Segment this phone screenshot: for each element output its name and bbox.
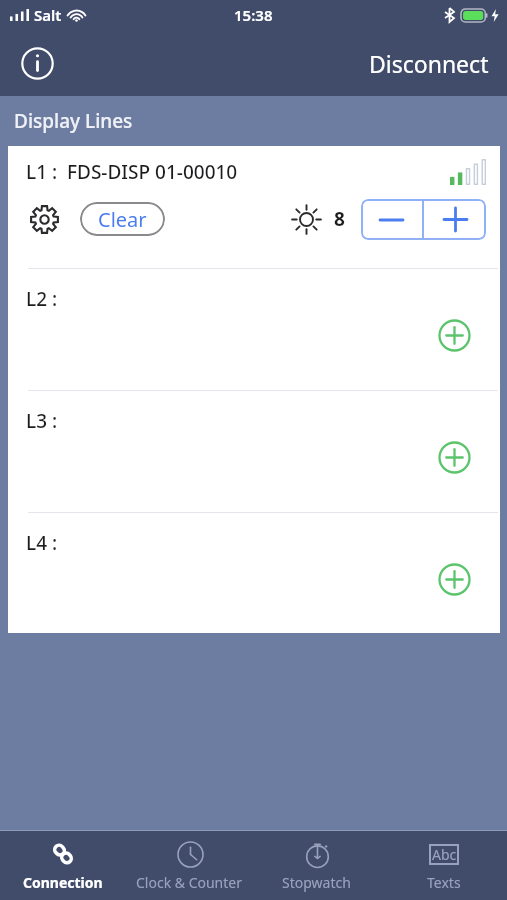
- button[interactable]: Settings: [22, 197, 66, 241]
- button[interactable]: Clear: [80, 202, 165, 236]
- button[interactable]: Add line L4 :: [434, 559, 474, 599]
- staticText: Display Lines: [14, 108, 133, 134]
- button[interactable]: Stopwatch: [253, 831, 380, 900]
- button[interactable]: Connection: [0, 831, 126, 900]
- button[interactable]: Disconnect: [365, 42, 493, 85]
- button[interactable]: Decrease brightness: [361, 199, 422, 240]
- staticText: Abc: [432, 845, 457, 864]
- button[interactable]: Add line L2 :: [434, 315, 474, 355]
- staticText: Disconnect: [369, 48, 489, 79]
- staticText: L1 : FDS-DISP 01-00010: [26, 159, 238, 185]
- staticText: L2 :: [26, 286, 58, 312]
- button[interactable]: Abc: [380, 831, 507, 900]
- staticText: L3 :: [26, 408, 58, 434]
- staticText: Clock & Counter: [136, 873, 243, 892]
- button[interactable]: Add line L3 :: [434, 437, 474, 477]
- staticText: Stopwatch: [282, 873, 351, 892]
- staticText: Salt: [34, 5, 62, 25]
- staticText: Clear: [98, 206, 147, 233]
- button[interactable]: Info: [14, 40, 60, 86]
- button[interactable]: Clock & Counter: [126, 831, 253, 900]
- staticText: L4 :: [26, 530, 58, 556]
- staticText: 15:38: [234, 5, 273, 25]
- staticText: Connection: [23, 873, 103, 892]
- staticText: Texts: [427, 873, 461, 892]
- staticText: 8: [334, 206, 345, 232]
- button[interactable]: Increase brightness: [424, 199, 486, 240]
